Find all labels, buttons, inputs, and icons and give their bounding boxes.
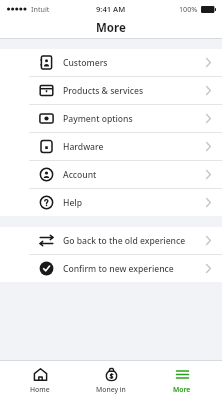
staticText: Payment options [63,113,133,125]
button[interactable]: Money in [80,364,142,397]
button[interactable]: Help [0,189,222,216]
staticText: Intuit [31,4,50,14]
staticText: Account [63,169,97,181]
button[interactable]: Products & services [0,77,222,105]
staticText: More [96,20,126,36]
staticText: Confirm to new experience [63,263,174,275]
staticText: Hardware [63,141,104,153]
button[interactable]: Account [0,161,222,189]
staticText: Money in [96,385,126,394]
button[interactable]: Confirm to new experience [0,255,222,282]
staticText: 100% [179,4,198,14]
staticText: 9:41 AM [96,4,126,14]
staticText: Products & services [63,85,144,97]
button[interactable]: Hardware [0,133,222,161]
staticText: Help [63,197,83,209]
staticText: More [173,385,191,394]
staticText: Customers [63,57,108,69]
staticText: Home [30,385,50,394]
button[interactable]: Home [9,364,71,397]
button[interactable]: More [151,364,213,397]
button[interactable]: Go back to the old experience [0,227,222,255]
staticText: Go back to the old experience [63,235,186,247]
button[interactable]: Customers [0,49,222,77]
button[interactable]: Payment options [0,105,222,133]
